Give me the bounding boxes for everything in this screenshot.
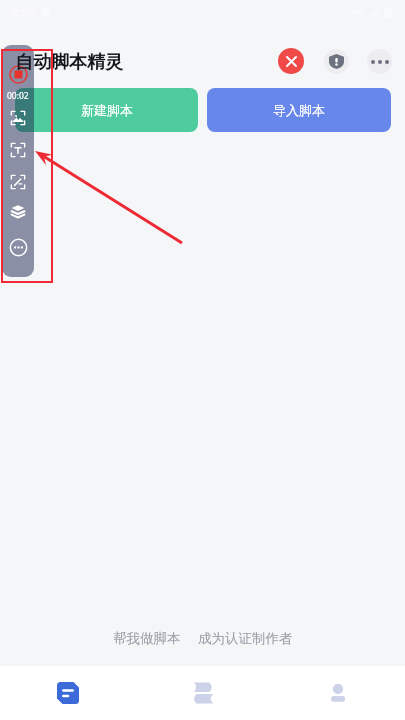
button[interactable]: Stop bbox=[278, 48, 304, 74]
button[interactable]: Scripts bbox=[0, 666, 135, 720]
staticText: 帮我做脚本 bbox=[113, 630, 181, 647]
staticText: 自动脚本精灵 bbox=[15, 51, 123, 74]
button[interactable]: Profile bbox=[270, 666, 405, 720]
button[interactable]: More bbox=[367, 49, 392, 74]
button[interactable]: 帮我做脚本 bbox=[109, 627, 185, 650]
button[interactable]: Security bbox=[324, 49, 349, 74]
button[interactable]: 新建脚本 bbox=[15, 88, 198, 132]
button[interactable]: Image scan bbox=[10, 110, 26, 126]
button[interactable]: Color scan bbox=[10, 174, 26, 190]
button[interactable]: More options bbox=[9, 238, 28, 257]
button[interactable]: Stop recording bbox=[9, 65, 28, 84]
button[interactable]: 导入脚本 bbox=[207, 88, 391, 132]
button[interactable]: Market bbox=[135, 666, 270, 720]
staticText: 00:02 bbox=[7, 90, 29, 102]
button[interactable]: Text scan bbox=[10, 142, 26, 158]
button[interactable]: Layers bbox=[10, 204, 26, 220]
button[interactable]: 成为认证制作者 bbox=[194, 627, 297, 650]
staticText: 新建脚本 bbox=[81, 102, 133, 118]
staticText: 成为认证制作者 bbox=[198, 630, 293, 647]
staticText: 导入脚本 bbox=[273, 102, 325, 118]
